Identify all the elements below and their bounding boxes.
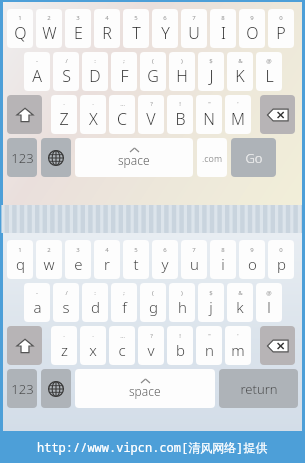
button[interactable]: : [82,283,108,322]
button[interactable]: ' [225,326,251,365]
button[interactable]: 2 [36,240,62,279]
button[interactable]: ) [169,52,195,91]
button[interactable]: - [24,52,50,91]
button[interactable]: ! [167,95,193,134]
staticText: r [104,254,110,274]
button[interactable]: · [51,326,77,365]
button[interactable]: 0 [268,240,294,279]
button[interactable]: 6 [152,240,178,279]
staticText: 2 [47,246,51,254]
staticText: X [89,108,98,130]
button[interactable]: @ [256,52,282,91]
button[interactable]: · [80,326,106,365]
button[interactable]: 1 [7,240,33,279]
button[interactable]: @ [256,283,282,322]
staticText: & [238,289,243,297]
button[interactable]: … [109,326,135,365]
button[interactable]: ; [111,283,137,322]
button[interactable]: 5 [123,240,149,279]
button[interactable]: 4 [94,240,120,279]
button[interactable]: 9 [239,9,265,48]
button[interactable]: 8 [210,9,236,48]
button[interactable]: space [75,369,215,408]
button[interactable]: Change keyboard [41,369,71,408]
staticText: / [65,289,68,297]
staticText: H [176,65,188,87]
button[interactable]: · [51,95,77,134]
staticText: ? [150,100,153,108]
button[interactable]: ( [140,52,166,91]
staticText: ' [237,332,239,340]
button[interactable]: Change keyboard [41,138,71,177]
button[interactable]: 3 [65,240,91,279]
staticText: : [94,289,96,297]
button[interactable]: Go [231,138,276,177]
staticText: 9 [250,246,254,254]
staticText: 0 [279,14,283,22]
button[interactable]: - [24,283,50,322]
staticText: W [42,22,57,44]
button[interactable]: & [227,52,253,91]
button[interactable]: ? [138,326,164,365]
button[interactable]: " [196,326,222,365]
staticText: V [146,108,156,130]
button[interactable]: & [227,283,253,322]
staticText: P [276,22,286,44]
staticText: F [120,65,129,87]
button[interactable]: " [196,95,222,134]
button[interactable]: 7 [181,240,207,279]
button[interactable]: : [82,52,108,91]
button[interactable]: Delete [260,95,295,134]
staticText: Q [14,22,27,44]
button[interactable]: 8 [210,240,236,279]
staticText: Y [161,22,170,44]
staticText: 9 [250,14,254,22]
staticText: t [133,254,139,274]
button[interactable]: $ [198,283,224,322]
button[interactable]: … [109,95,135,134]
button[interactable]: 3 [65,9,91,48]
staticText: : [94,57,96,65]
staticText: T [132,22,141,44]
button[interactable]: 9 [239,240,265,279]
button[interactable]: Delete [260,326,295,365]
button[interactable]: .com [197,138,227,177]
staticText: D [89,65,101,87]
button[interactable]: / [53,283,79,322]
button[interactable]: 0 [268,9,294,48]
button[interactable]: · [80,95,106,134]
staticText: 5 [134,14,138,22]
button[interactable]: space [75,138,193,177]
button[interactable]: ' [225,95,251,134]
staticText: @ [266,289,272,297]
staticText: z [61,340,68,360]
staticText: 4 [105,246,109,254]
button[interactable]: 1 [7,9,33,48]
button[interactable]: ? [138,95,164,134]
staticText: G [147,65,159,87]
button[interactable]: 123 [7,369,37,408]
button[interactable]: / [53,52,79,91]
button[interactable]: ) [169,283,195,322]
button[interactable]: 7 [181,9,207,48]
staticText: w [43,254,55,274]
button[interactable]: 123 [7,138,37,177]
staticText: 8 [221,246,225,254]
staticText: o [248,254,257,274]
button[interactable]: 2 [36,9,62,48]
staticText: 123 [11,149,34,167]
button[interactable]: 6 [152,9,178,48]
button[interactable]: ! [167,326,193,365]
staticText: B [175,108,186,130]
button[interactable]: $ [198,52,224,91]
button[interactable]: 5 [123,9,149,48]
button[interactable]: Shift [7,95,42,134]
button[interactable]: ( [140,283,166,322]
button[interactable]: Shift [7,326,42,365]
button[interactable]: 4 [94,9,120,48]
staticText: y [161,254,169,274]
button[interactable]: return [219,369,298,408]
staticText: .com [202,152,222,164]
staticText: N [203,108,215,130]
button[interactable]: ; [111,52,137,91]
